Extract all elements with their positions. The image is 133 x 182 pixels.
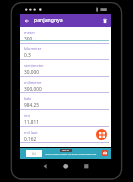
staticText: Ad [32, 152, 36, 156]
staticText: 984.25 [24, 102, 40, 109]
button[interactable]: mil laut [20, 127, 111, 143]
button[interactable]: kilometer [20, 43, 111, 60]
button[interactable]: Convert [96, 129, 107, 140]
staticText: mil laut [24, 130, 38, 135]
staticText: Lorem ipsum dolor sit amet consectetur e… [45, 152, 97, 155]
button[interactable]: Navigate up [20, 14, 34, 27]
staticText: kaki [24, 96, 32, 101]
staticText: panjangnya [34, 17, 63, 24]
staticText: inci [24, 113, 31, 118]
button[interactable]: Delete [99, 14, 111, 27]
button[interactable]: inci [20, 110, 111, 127]
button[interactable]: kaki [20, 93, 111, 110]
staticText: sentimeter [24, 63, 44, 68]
button[interactable]: milimeter [20, 77, 111, 93]
staticText: kilometer [24, 46, 42, 51]
staticText: meter [24, 30, 36, 35]
staticText: 300 [24, 36, 33, 43]
staticText: Test Ad [62, 149, 70, 152]
staticText: milimeter [24, 80, 42, 85]
staticText: 300,000 [24, 86, 42, 93]
button[interactable]: meter [20, 27, 111, 43]
staticText: 0.162 [24, 136, 37, 143]
staticText: 0.3 [24, 52, 31, 59]
staticText: 11,811 [24, 119, 40, 126]
button[interactable]: Ad [20, 148, 111, 159]
staticText: 30,000 [24, 69, 40, 76]
button[interactable]: sentimeter [20, 60, 111, 77]
